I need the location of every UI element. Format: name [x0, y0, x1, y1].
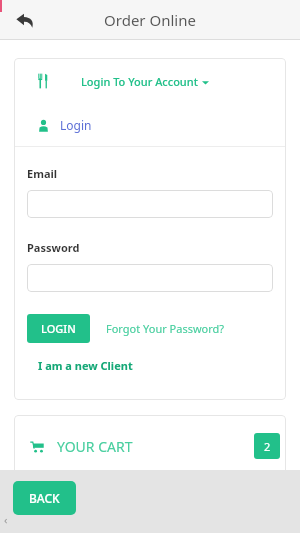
button[interactable]: BACK	[13, 481, 76, 515]
button[interactable]: Login To Your Account	[14, 58, 286, 104]
button[interactable]: I am a new Client	[27, 355, 144, 376]
button[interactable]: Forgot Your Password?	[104, 319, 227, 338]
staticText: BACK	[29, 490, 60, 506]
button[interactable]: YOUR CART	[14, 415, 286, 477]
staticText: Order Online	[104, 10, 196, 30]
button[interactable]: LOGIN	[27, 314, 90, 343]
staticText: Login To Your Account	[81, 74, 198, 89]
button[interactable]	[27, 190, 273, 218]
staticText: Password	[27, 240, 80, 255]
button[interactable]: Back	[8, 3, 42, 37]
staticText: ‹	[4, 512, 8, 527]
staticText: Email	[27, 166, 58, 181]
staticText: 2	[264, 439, 271, 454]
staticText: YOUR CART	[57, 437, 133, 456]
staticText: Forgot Your Password?	[106, 321, 225, 336]
staticText: Login	[60, 117, 92, 133]
button[interactable]: Login	[14, 104, 286, 146]
staticText: LOGIN	[41, 321, 76, 336]
button[interactable]	[27, 264, 273, 292]
staticText: I am a new Client	[38, 358, 133, 373]
